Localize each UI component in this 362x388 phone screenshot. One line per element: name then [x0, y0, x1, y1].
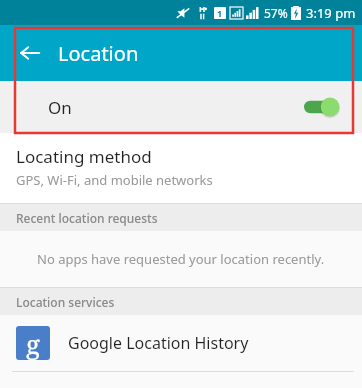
- button[interactable]: Locating method: [0, 133, 362, 203]
- staticText: Location services: [16, 294, 115, 310]
- staticText: On: [48, 96, 72, 119]
- staticText: GPS, Wi-Fi, and mobile networks: [16, 171, 213, 189]
- staticText: Locating method: [16, 145, 152, 168]
- button[interactable]: On: [0, 81, 362, 133]
- button[interactable]: g: [0, 315, 362, 371]
- staticText: 3:19 pm: [306, 4, 356, 22]
- staticText: 57%: [264, 5, 288, 21]
- staticText: Recent location requests: [16, 210, 158, 226]
- staticText: Location: [58, 40, 139, 67]
- staticText: 1: [217, 7, 223, 19]
- staticText: g: [26, 326, 40, 360]
- staticText: Google Location History: [68, 332, 249, 354]
- button[interactable]: Back: [10, 33, 50, 73]
- staticText: No apps have requested your location rec…: [37, 250, 325, 268]
